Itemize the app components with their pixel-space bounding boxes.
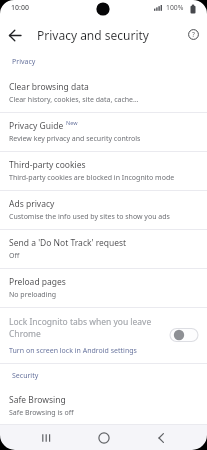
- staticText: Clear browsing data: [9, 81, 89, 93]
- button[interactable]: Send a 'Do Not Track' request: [0, 230, 207, 268]
- button[interactable]: [151, 428, 171, 448]
- staticText: No preloading: [9, 290, 57, 300]
- staticText: Third-party cookies: [9, 159, 86, 171]
- staticText: Ads privacy: [9, 198, 55, 210]
- staticText: Customise the info used by sites to show…: [9, 212, 170, 222]
- staticText: Privacy and security: [37, 27, 149, 43]
- staticText: 100%: [166, 3, 184, 12]
- staticText: ?: [192, 30, 195, 39]
- staticText: Clear history, cookies, site data, cache…: [9, 95, 139, 105]
- staticText: New: [66, 119, 78, 126]
- button[interactable]: [36, 428, 56, 448]
- staticText: Privacy Guide: [9, 120, 64, 132]
- button[interactable]: Safe Browsing: [0, 388, 207, 424]
- staticText: Third-party cookies are blocked in Incog…: [9, 173, 175, 183]
- staticText: Preload pages: [9, 276, 66, 288]
- staticText: Turn on screen lock in Android settings: [9, 346, 137, 356]
- staticText: 10:00: [11, 3, 29, 13]
- staticText: Safe Browsing is off: [9, 408, 74, 418]
- button[interactable]: Third-party cookies: [0, 152, 207, 190]
- button[interactable]: Preload pages: [0, 269, 207, 307]
- staticText: Review key privacy and security controls: [9, 134, 141, 144]
- button[interactable]: Lock Incognito tabs when you leave Chrom…: [0, 308, 207, 363]
- button[interactable]: [0, 20, 30, 50]
- button[interactable]: Ads privacy: [0, 191, 207, 229]
- button[interactable]: [94, 428, 114, 448]
- button[interactable]: Privacy Guide: [0, 113, 207, 151]
- staticText: Lock Incognito tabs when you leave Chrom…: [9, 316, 152, 340]
- button[interactable]: ?: [187, 28, 200, 41]
- staticText: Security: [12, 371, 39, 381]
- button[interactable]: Clear browsing data: [0, 74, 207, 112]
- staticText: Privacy: [12, 57, 36, 67]
- staticText: Send a 'Do Not Track' request: [9, 237, 127, 249]
- staticText: Off: [9, 251, 20, 261]
- staticText: Safe Browsing: [9, 394, 66, 406]
